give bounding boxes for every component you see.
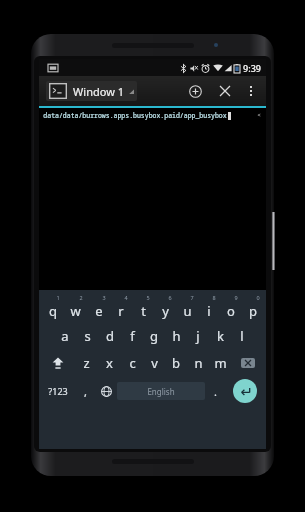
button[interactable]: 3 <box>87 293 110 322</box>
staticText: d <box>106 327 114 345</box>
staticText: f <box>130 327 135 345</box>
button[interactable]: h <box>165 322 187 349</box>
staticText: w <box>70 302 81 320</box>
button[interactable]: 5 <box>132 293 154 322</box>
staticText: c <box>129 354 136 372</box>
staticText: a <box>61 327 69 345</box>
button[interactable]: v <box>143 349 165 376</box>
staticText: 8 <box>212 294 216 301</box>
staticText: data/data/burrows.apps.busybox.paid/app_… <box>43 111 227 120</box>
button[interactable]: b <box>165 349 187 376</box>
staticText: o <box>227 302 235 320</box>
staticText: i <box>207 302 211 320</box>
button[interactable]: Window 1 <box>46 81 137 101</box>
staticText: z <box>83 354 90 372</box>
staticText: t <box>141 302 146 320</box>
staticText: 6 <box>168 294 172 301</box>
staticText: g <box>150 327 158 345</box>
button[interactable]: 8 <box>198 293 220 322</box>
button[interactable]: Change language <box>96 376 117 406</box>
button[interactable]: . <box>205 376 226 406</box>
button[interactable]: ?123 <box>41 376 75 406</box>
button[interactable]: Shift <box>41 349 75 376</box>
staticText: m <box>214 354 227 372</box>
button[interactable]: 4 <box>110 293 132 322</box>
staticText: p <box>249 302 257 320</box>
button[interactable]: n <box>187 349 209 376</box>
staticText: 2 <box>79 294 83 301</box>
staticText: 7 <box>190 294 194 301</box>
staticText: < <box>257 111 261 119</box>
staticText: h <box>172 327 181 345</box>
button[interactable]: Enter <box>233 379 257 403</box>
staticText: 4 <box>124 294 128 301</box>
button[interactable]: c <box>121 349 143 376</box>
staticText: 9:39 <box>243 62 261 74</box>
staticText: y <box>162 302 169 320</box>
staticText: j <box>196 327 200 345</box>
staticText: k <box>217 327 224 345</box>
staticText: u <box>183 302 192 320</box>
button[interactable]: k <box>209 322 231 349</box>
staticText: n <box>194 354 203 372</box>
staticText: l <box>240 327 244 345</box>
staticText: English <box>147 386 175 397</box>
button[interactable]: 2 <box>64 293 87 322</box>
staticText: 0 <box>256 294 260 301</box>
staticText: r <box>118 302 124 320</box>
staticText: b <box>172 354 180 372</box>
button[interactable]: m <box>209 349 231 376</box>
staticText: x <box>106 354 113 372</box>
button[interactable]: English <box>117 382 205 400</box>
button[interactable]: d <box>99 322 121 349</box>
button[interactable]: f <box>121 322 143 349</box>
button[interactable]: Close window <box>210 76 240 106</box>
button[interactable]: s <box>76 322 99 349</box>
button[interactable]: 0 <box>242 293 264 322</box>
staticText: ?123 <box>48 385 68 397</box>
button[interactable]: More options <box>240 76 262 106</box>
staticText: s <box>84 327 91 345</box>
button[interactable]: j <box>187 322 209 349</box>
button[interactable]: l <box>231 322 253 349</box>
button[interactable]: z <box>75 349 98 376</box>
staticText: , <box>84 384 87 399</box>
button[interactable]: x <box>98 349 121 376</box>
button[interactable]: a <box>53 322 76 349</box>
staticText: . <box>214 384 217 399</box>
button[interactable]: Delete <box>231 349 264 376</box>
button[interactable]: 1 <box>41 293 64 322</box>
staticText: v <box>151 354 158 372</box>
staticText: 1 <box>56 294 60 301</box>
button[interactable]: g <box>143 322 165 349</box>
staticText: 5 <box>146 294 150 301</box>
button[interactable]: 7 <box>176 293 198 322</box>
button[interactable]: New window <box>180 76 210 106</box>
button[interactable]: data/data/burrows.apps.busybox.paid/app_… <box>39 108 266 290</box>
button[interactable]: 9 <box>220 293 242 322</box>
staticText: 3 <box>102 294 106 301</box>
button[interactable]: 6 <box>154 293 176 322</box>
staticText: Window 1 <box>73 84 124 99</box>
staticText: 9 <box>234 294 238 301</box>
staticText: e <box>95 302 103 320</box>
button[interactable]: , <box>75 376 96 406</box>
staticText: q <box>49 302 57 320</box>
